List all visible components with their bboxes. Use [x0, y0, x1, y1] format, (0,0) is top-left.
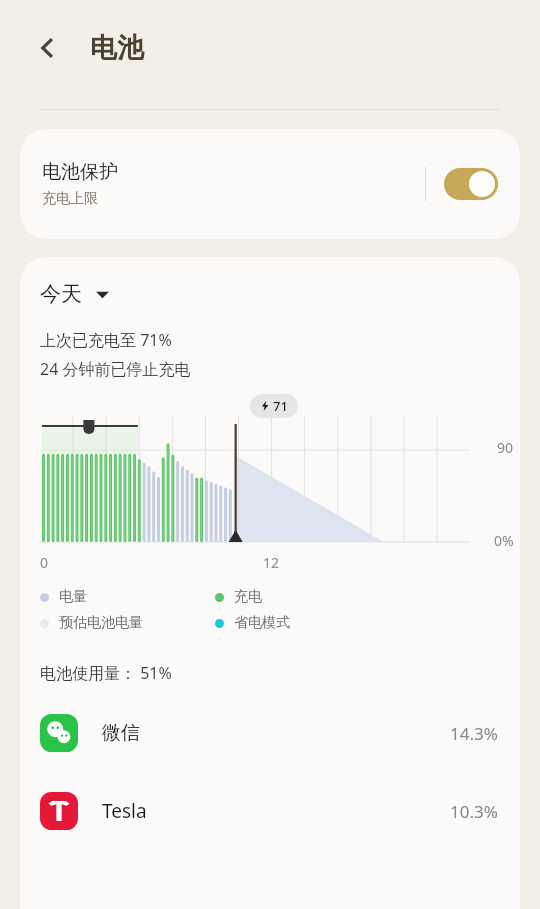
staticText: 90	[497, 438, 514, 457]
staticText: 71	[273, 397, 288, 415]
staticText: 12	[263, 553, 280, 572]
staticText: Tesla	[102, 798, 450, 824]
staticText: 充电	[234, 588, 262, 606]
staticText: 10.3%	[450, 800, 498, 823]
staticText: 0	[40, 553, 49, 572]
staticText: 电池	[90, 31, 144, 65]
staticText: 电池保护	[42, 160, 118, 184]
staticText: 充电上限	[42, 190, 98, 208]
button[interactable]: 微信	[20, 702, 520, 764]
button[interactable]: 电池保护	[20, 129, 520, 239]
button[interactable]: Tesla	[20, 780, 520, 842]
staticText: 省电模式	[234, 614, 290, 632]
staticText: 上次已充电至 71%	[40, 329, 172, 351]
staticText: 0%	[494, 531, 514, 550]
staticText: 今天	[40, 281, 82, 307]
staticText: 24 分钟前已停止充电	[40, 358, 191, 380]
staticText: 电池使用量： 51%	[40, 662, 172, 684]
staticText: 电量	[59, 588, 87, 606]
button[interactable]: Battery protection toggle	[444, 168, 498, 200]
button[interactable]: 今天	[40, 281, 109, 307]
button[interactable]: Back	[26, 26, 70, 70]
staticText: 预估电池电量	[59, 614, 143, 632]
staticText: 微信	[102, 721, 450, 745]
staticText: 14.3%	[450, 722, 498, 745]
